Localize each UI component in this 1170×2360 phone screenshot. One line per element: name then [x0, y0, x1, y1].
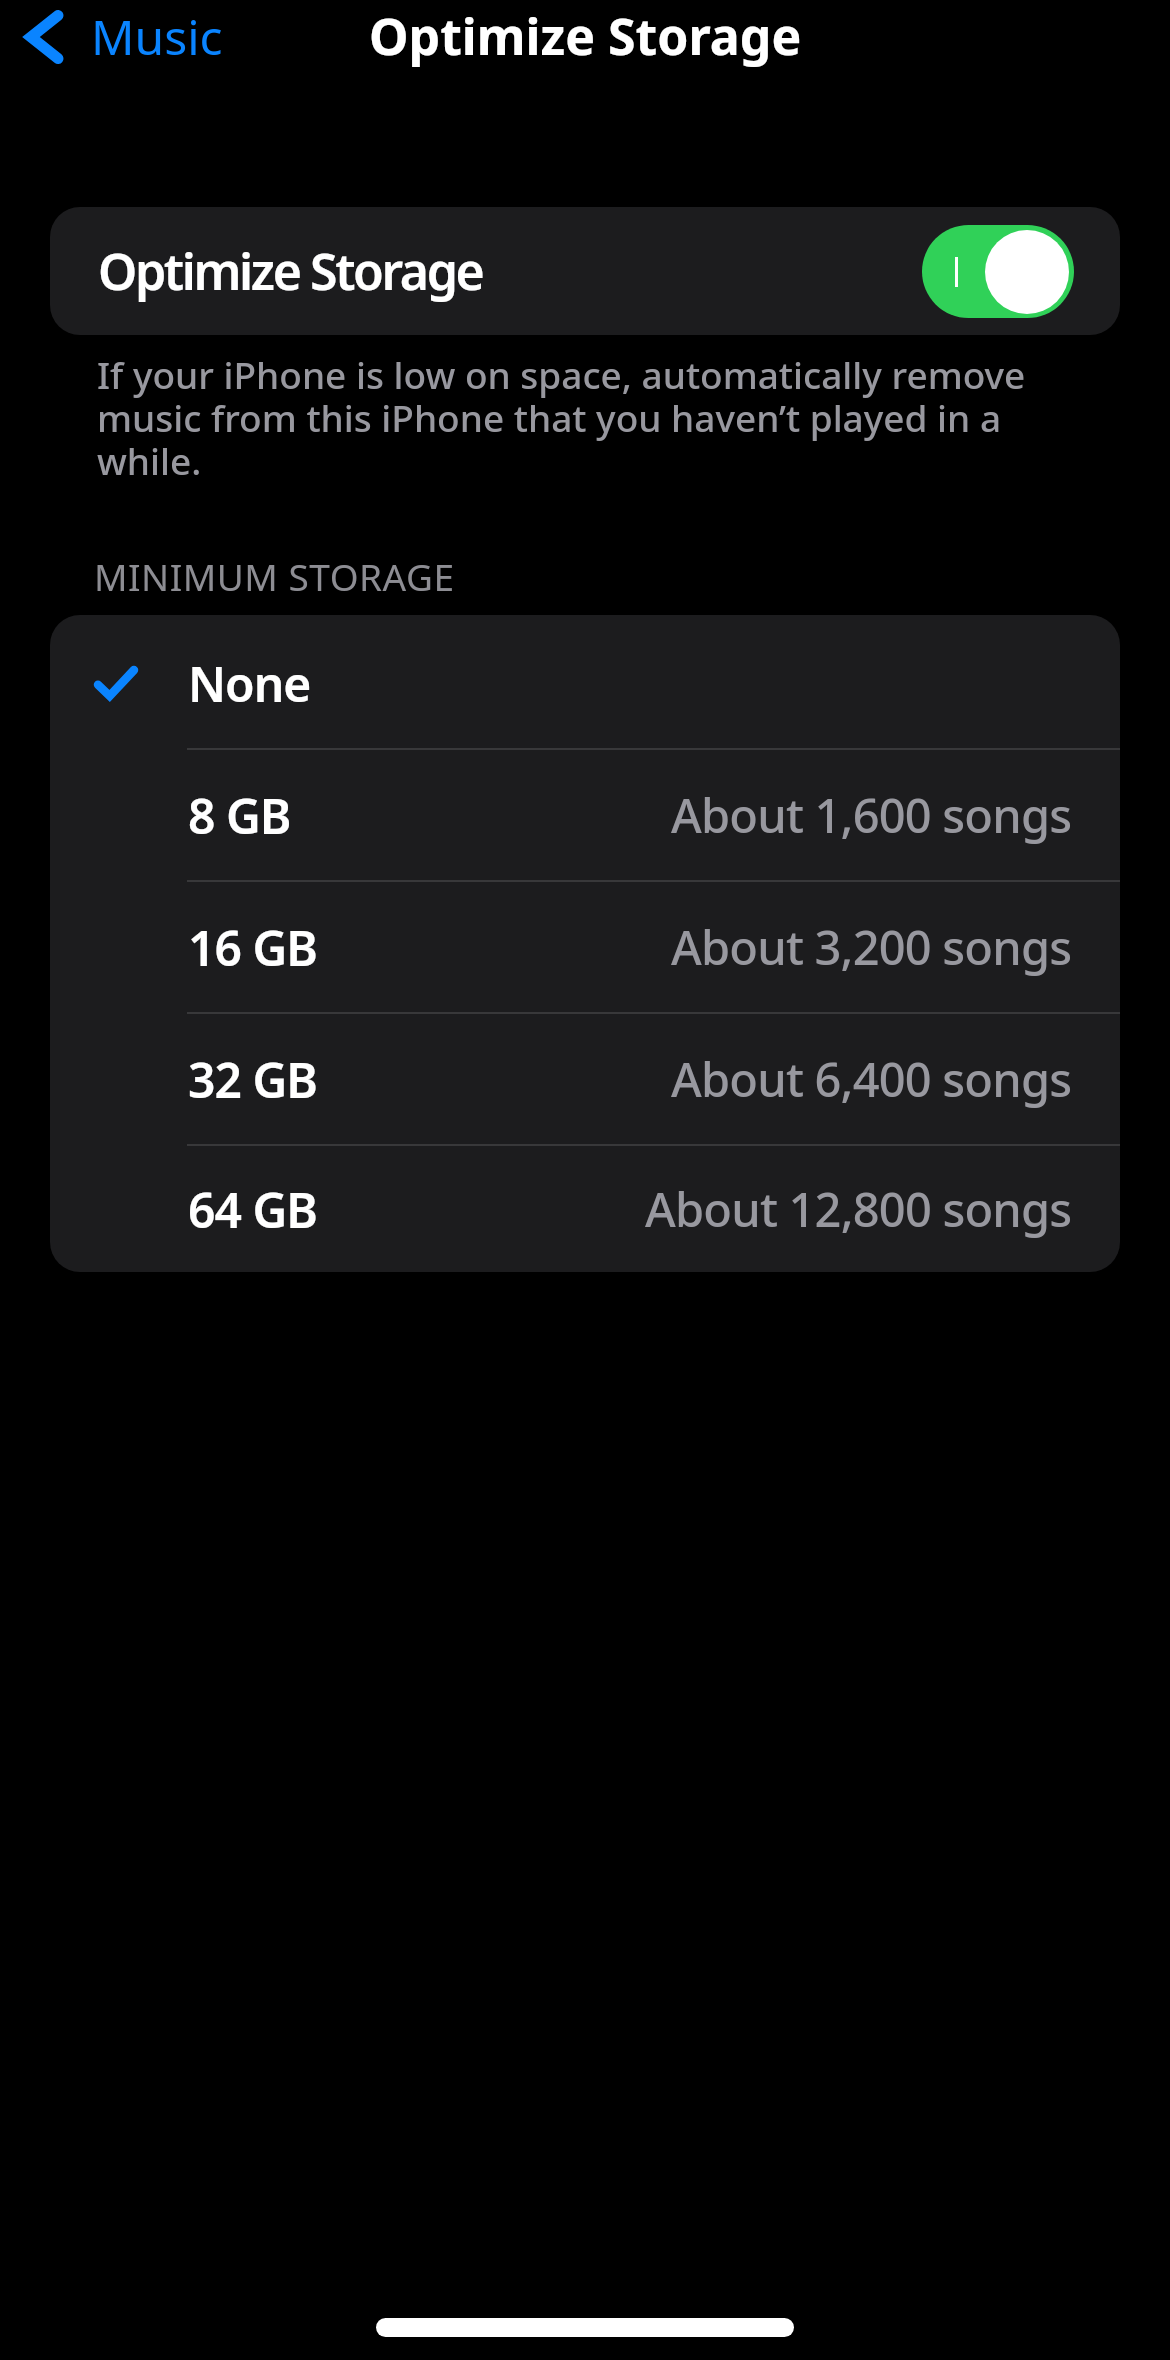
staticText: About 3,200 songs — [671, 915, 1072, 979]
staticText: MINIMUM STORAGE — [94, 551, 455, 601]
staticText: 64 GB — [188, 1177, 317, 1242]
button[interactable]: 32 GB — [50, 1014, 1120, 1144]
button[interactable]: 8 GB — [50, 750, 1120, 880]
button[interactable] — [922, 225, 1074, 318]
staticText: None — [188, 651, 311, 716]
staticText: Optimize Storage — [369, 2, 802, 70]
button[interactable]: Music — [25, 4, 223, 69]
staticText: About 6,400 songs — [671, 1047, 1072, 1111]
button[interactable]: 64 GB — [50, 1146, 1120, 1272]
staticText: Optimize Storage — [98, 237, 483, 305]
staticText: 16 GB — [188, 915, 317, 980]
button[interactable]: Optimize Storage — [50, 207, 1120, 335]
staticText: If your iPhone is low on space, automati… — [97, 349, 1026, 486]
staticText: About 12,800 songs — [645, 1177, 1072, 1241]
staticText: 8 GB — [188, 783, 291, 848]
staticText: 32 GB — [188, 1047, 317, 1112]
staticText: About 1,600 songs — [671, 783, 1072, 847]
button[interactable]: 16 GB — [50, 882, 1120, 1012]
button[interactable]: None — [50, 618, 1120, 748]
staticText: Music — [91, 4, 223, 69]
